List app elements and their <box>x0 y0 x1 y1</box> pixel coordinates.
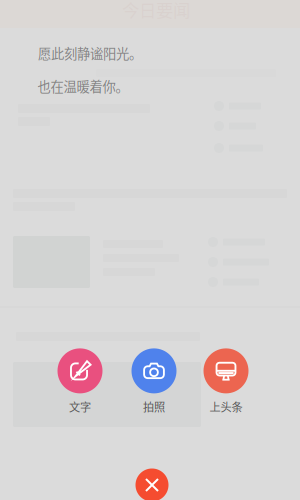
staticText: 也在温暖着你。 <box>37 76 128 96</box>
staticText: 拍照 <box>143 398 165 415</box>
staticText: 文字 <box>69 398 91 415</box>
staticText: 愿此刻静谧阳光。 <box>38 43 142 63</box>
button[interactable]: 上头条 <box>191 350 261 413</box>
staticText: 上头条 <box>209 398 242 415</box>
button[interactable]: 拍照 <box>119 350 189 413</box>
button[interactable]: 文字 <box>45 350 115 413</box>
button[interactable]: Close <box>135 468 168 500</box>
